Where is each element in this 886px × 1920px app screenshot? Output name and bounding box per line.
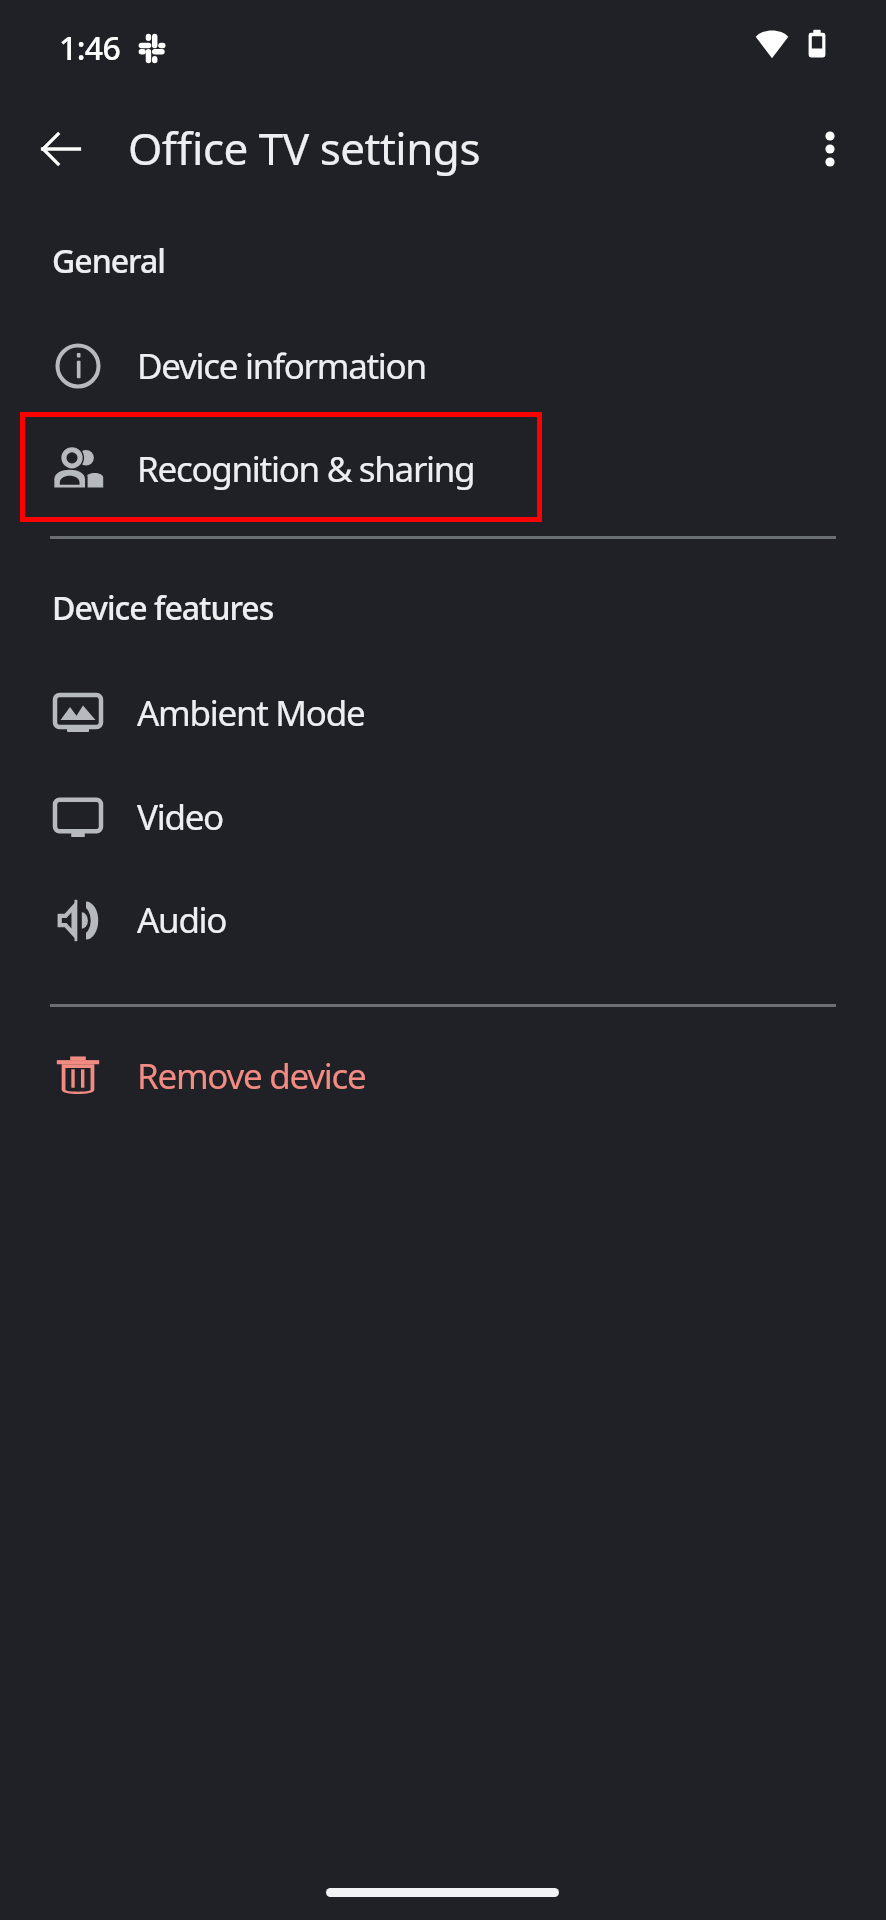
staticText: Ambient Mode <box>137 689 365 737</box>
button[interactable]: Video <box>0 765 886 869</box>
staticText: General <box>52 239 165 283</box>
staticText: Device features <box>52 586 274 630</box>
staticText: Recognition & sharing <box>137 445 475 493</box>
staticText: Audio <box>137 896 227 944</box>
staticText: Remove device <box>137 1052 366 1100</box>
button[interactable]: Device information <box>0 314 886 418</box>
button[interactable]: Recognition & sharing <box>0 417 886 521</box>
button[interactable]: Back <box>28 116 94 182</box>
button[interactable]: Remove device <box>0 1024 886 1128</box>
staticText: Device information <box>137 342 426 390</box>
button[interactable]: Ambient Mode <box>0 661 886 765</box>
staticText: Video <box>137 793 223 841</box>
button[interactable]: Audio <box>0 868 886 972</box>
button[interactable]: More options <box>797 116 863 182</box>
staticText: 1:46 <box>59 26 121 70</box>
staticText: Office TV settings <box>128 118 481 178</box>
